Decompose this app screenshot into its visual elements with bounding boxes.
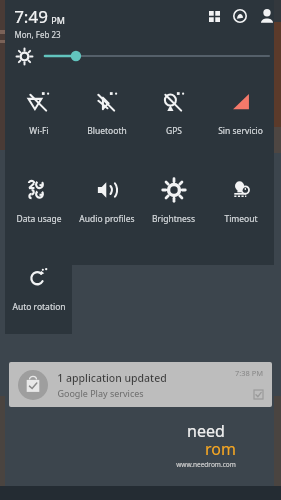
staticText: Audio profiles (79, 213, 135, 225)
button[interactable]: Auto rotation (5, 246, 72, 334)
staticText: Auto rotation (12, 301, 66, 313)
staticText: Brightness (152, 213, 195, 225)
staticText: Sin servicio (218, 125, 263, 137)
button[interactable]: Brightness (140, 158, 207, 246)
staticText: 7:49 (14, 5, 48, 28)
staticText: www.needrom.com (176, 460, 236, 469)
staticText: Google Play services (57, 387, 144, 399)
staticText: Wi-Fi (29, 125, 49, 137)
staticText: 7:38 PM (235, 368, 264, 378)
button[interactable]: Sin servicio (207, 70, 274, 158)
staticText: PM (51, 14, 65, 26)
staticText: Timeout (224, 213, 258, 225)
button[interactable]: Tiles (203, 5, 225, 27)
button[interactable] (5, 42, 274, 70)
staticText: 1 application updated (57, 371, 167, 385)
staticText: rom (205, 438, 236, 460)
staticText: need (187, 420, 225, 442)
button[interactable]: Wi-Fi (5, 70, 73, 158)
button[interactable]: 1 application updated (9, 362, 272, 407)
button[interactable]: Bluetooth (73, 70, 140, 158)
button[interactable]: GPS (140, 70, 207, 158)
button[interactable]: Audio profiles (73, 158, 140, 246)
button[interactable]: Settings (229, 5, 251, 27)
staticText: Mon, Feb 23 (14, 29, 61, 40)
button[interactable]: Timeout (207, 158, 274, 246)
button[interactable]: Data usage (5, 158, 73, 246)
staticText: Data usage (16, 213, 62, 225)
staticText: GPS (166, 125, 182, 137)
button[interactable]: User profile (255, 4, 279, 28)
staticText: Bluetooth (87, 125, 127, 137)
